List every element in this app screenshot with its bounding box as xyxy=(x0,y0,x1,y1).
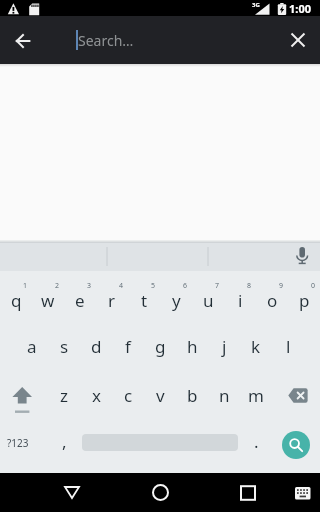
button[interactable]: 8 xyxy=(224,271,256,322)
staticText: 9 xyxy=(279,281,284,291)
button[interactable]: 7 xyxy=(192,271,224,322)
staticText: b xyxy=(187,384,198,407)
staticText: o xyxy=(267,289,278,312)
button[interactable]: . xyxy=(240,419,272,466)
button[interactable]: 0 xyxy=(288,271,320,322)
staticText: ?123 xyxy=(7,436,29,450)
staticText: a xyxy=(27,335,37,358)
staticText: 3 xyxy=(87,281,92,291)
staticText: q xyxy=(11,289,22,312)
staticText: u xyxy=(203,289,214,312)
staticText: 1:00 xyxy=(289,1,311,16)
staticText: w xyxy=(41,289,55,312)
staticText: 5 xyxy=(151,281,156,291)
button[interactable]: b xyxy=(176,371,208,419)
staticText: h xyxy=(187,335,198,358)
staticText: l xyxy=(286,335,291,358)
button[interactable]: j xyxy=(208,322,240,371)
button[interactable]: s xyxy=(48,322,80,371)
staticText: n xyxy=(219,384,230,407)
button[interactable]: 4 xyxy=(96,271,128,322)
button[interactable]: 6 xyxy=(160,271,192,322)
button[interactable]: 2 xyxy=(32,271,64,322)
staticText: . xyxy=(254,430,259,453)
staticText: i xyxy=(238,289,243,312)
button[interactable] xyxy=(226,473,270,512)
staticText: 6 xyxy=(183,281,188,291)
button[interactable]: c xyxy=(112,371,144,419)
staticText: 7 xyxy=(215,281,220,291)
button[interactable] xyxy=(288,480,318,506)
staticText: 0 xyxy=(311,281,316,291)
staticText: m xyxy=(248,384,264,407)
button[interactable]: f xyxy=(112,322,144,371)
button[interactable] xyxy=(138,473,182,512)
staticText: k xyxy=(251,335,261,358)
button[interactable]: v xyxy=(144,371,176,419)
button[interactable] xyxy=(0,16,46,64)
button[interactable] xyxy=(272,371,320,419)
button[interactable] xyxy=(0,243,320,271)
button[interactable]: n xyxy=(208,371,240,419)
button[interactable]: d xyxy=(80,322,112,371)
staticText: j xyxy=(222,335,227,358)
staticText: 4 xyxy=(119,281,124,291)
button[interactable]: l xyxy=(272,322,304,371)
staticText: z xyxy=(60,384,68,407)
staticText: d xyxy=(91,335,102,358)
button[interactable] xyxy=(0,371,48,419)
staticText: p xyxy=(299,289,310,312)
button[interactable]: z xyxy=(48,371,80,419)
button[interactable] xyxy=(282,431,310,459)
staticText: , xyxy=(62,430,67,453)
staticText: t xyxy=(141,289,148,312)
staticText: 1 xyxy=(23,281,28,291)
button[interactable]: 9 xyxy=(256,271,288,322)
staticText: c xyxy=(124,384,133,407)
button[interactable]: x xyxy=(80,371,112,419)
button[interactable] xyxy=(50,473,94,512)
button[interactable]: h xyxy=(176,322,208,371)
staticText: 2 xyxy=(55,281,60,291)
button[interactable]: 1 xyxy=(0,271,32,322)
button[interactable]: a xyxy=(16,322,48,371)
staticText: Search… xyxy=(78,31,134,50)
staticText: x xyxy=(92,384,101,407)
staticText: y xyxy=(172,289,181,312)
staticText: e xyxy=(75,289,85,312)
staticText: s xyxy=(60,335,69,358)
button[interactable]: ?123 xyxy=(0,419,36,466)
button[interactable]: , xyxy=(48,419,80,466)
button[interactable]: 3 xyxy=(64,271,96,322)
button[interactable]: k xyxy=(240,322,272,371)
staticText: f xyxy=(125,335,131,358)
staticText: 3G xyxy=(252,1,260,9)
staticText: 8 xyxy=(247,281,252,291)
staticText: g xyxy=(155,335,166,358)
staticText: v xyxy=(156,384,165,407)
button[interactable]: m xyxy=(240,371,272,419)
button[interactable] xyxy=(275,16,320,64)
button[interactable]: g xyxy=(144,322,176,371)
button[interactable]: Search… xyxy=(76,16,134,64)
button[interactable]: 5 xyxy=(128,271,160,322)
staticText: r xyxy=(108,289,116,312)
